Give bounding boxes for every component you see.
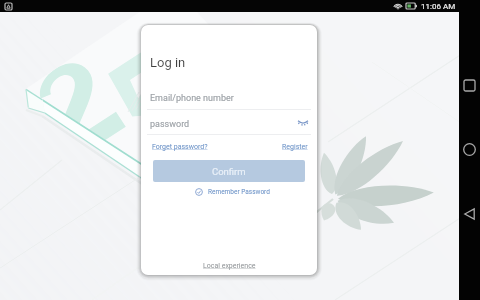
button[interactable]: Register [282, 143, 308, 151]
staticText: Email/phone number [150, 93, 234, 104]
button[interactable]: Forget password? [152, 143, 208, 151]
staticText: Confirm [212, 166, 246, 177]
staticText: Log in [150, 55, 186, 70]
button[interactable]: Back [459, 202, 480, 225]
button[interactable]: Remember Password [195, 188, 270, 196]
button[interactable]: Confirm [153, 160, 305, 182]
staticText: Remember Password [208, 188, 270, 196]
button[interactable]: Show password [293, 115, 313, 129]
staticText: 11:06 AM [421, 2, 456, 11]
button[interactable]: Recents [459, 74, 480, 97]
button[interactable]: Home [459, 138, 480, 161]
staticText: password [150, 119, 190, 130]
button[interactable]: Local experience [203, 262, 256, 270]
